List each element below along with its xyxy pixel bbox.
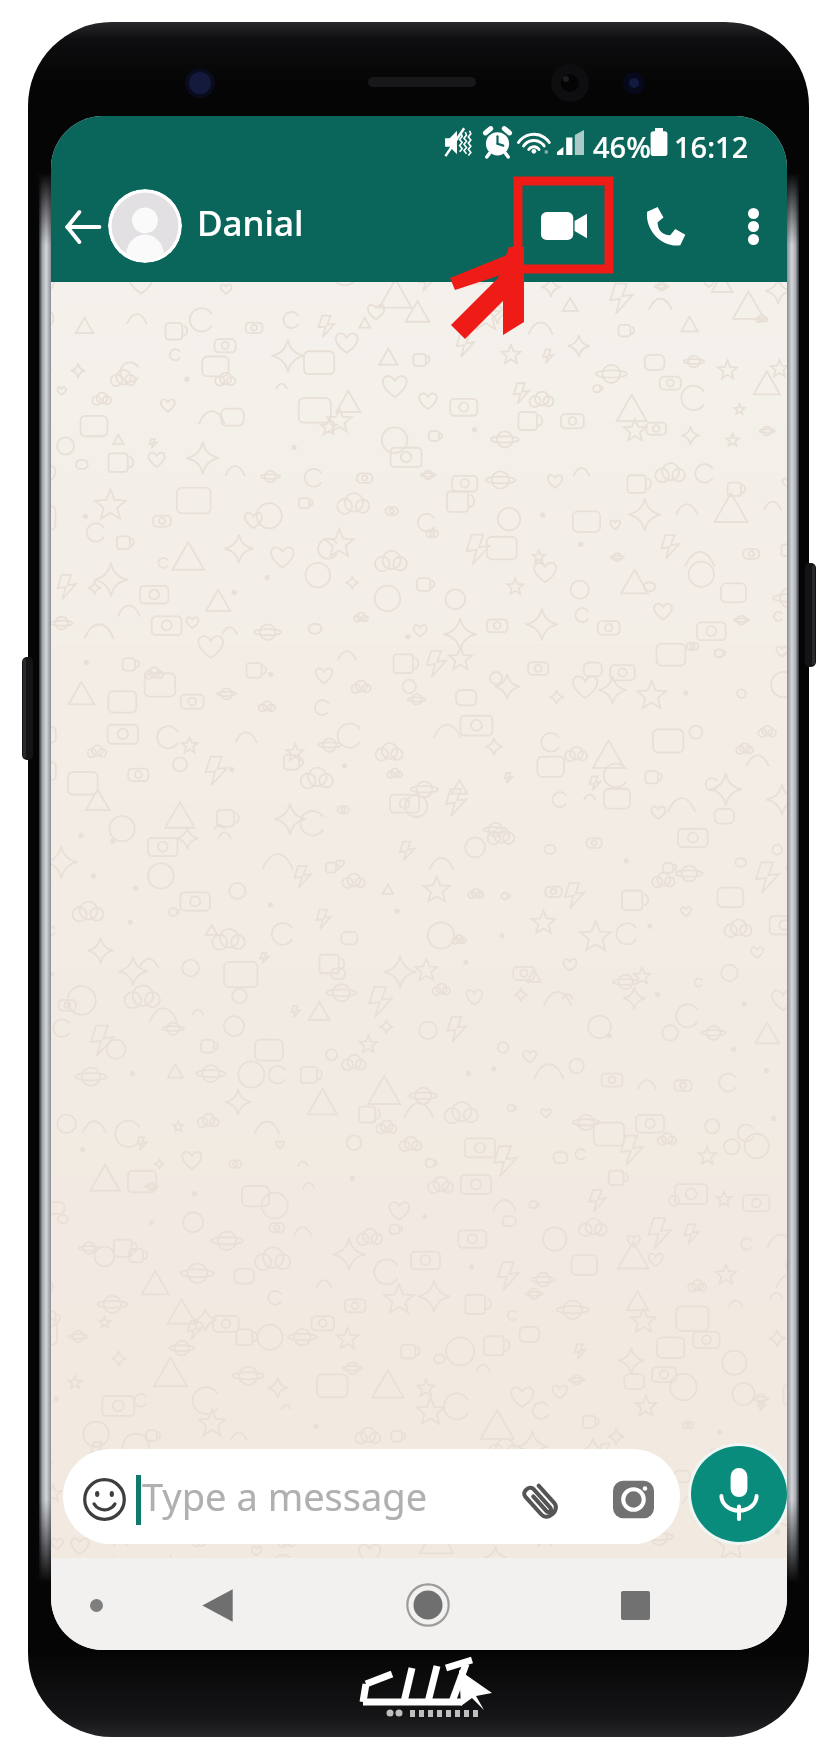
button[interactable]: Record voice message xyxy=(688,1443,787,1545)
staticText: 16:12 xyxy=(674,127,749,166)
staticText: Danial xyxy=(197,199,304,247)
button[interactable]: Home xyxy=(393,1570,463,1640)
button[interactable]: Recent apps xyxy=(600,1570,670,1640)
button[interactable]: Contact photo xyxy=(108,189,182,263)
button[interactable]: Video call xyxy=(532,193,596,259)
button[interactable]: More options xyxy=(725,193,781,259)
button[interactable]: Back xyxy=(57,196,109,258)
staticText: 46% xyxy=(593,127,651,166)
button[interactable]: Type a message xyxy=(63,1449,680,1544)
staticText: Type a message xyxy=(142,1470,428,1522)
button[interactable]: Back xyxy=(182,1570,252,1640)
button[interactable]: Voice call xyxy=(634,193,698,259)
